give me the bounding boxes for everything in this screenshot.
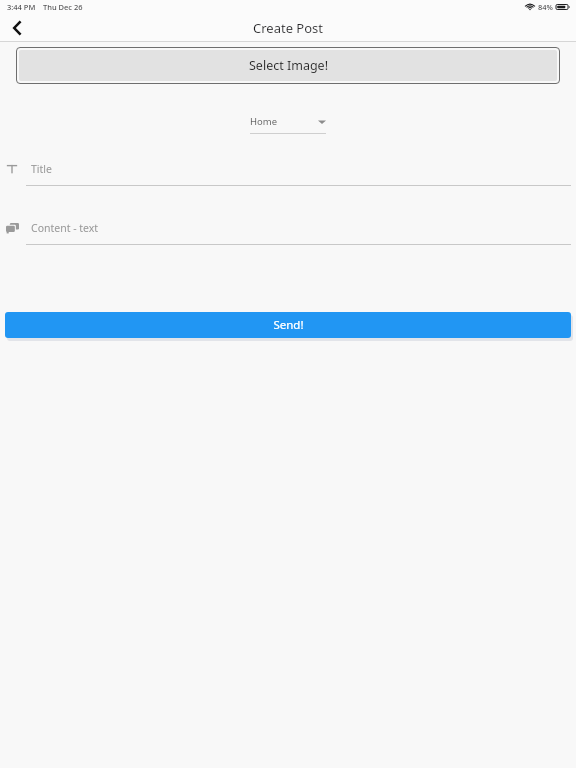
button[interactable]: Content - text <box>0 220 576 245</box>
button[interactable]: Back <box>0 14 34 42</box>
staticText: Thu Dec 26 <box>43 2 83 12</box>
staticText: Select Image! <box>249 57 328 74</box>
button[interactable]: Title <box>0 161 576 186</box>
button[interactable]: Select Image! <box>19 50 557 81</box>
staticText: 84% <box>538 2 553 12</box>
staticText: Create Post <box>253 19 324 37</box>
button[interactable]: Send! <box>5 312 571 338</box>
staticText: Send! <box>273 317 304 333</box>
staticText: Content - text <box>31 221 99 235</box>
button[interactable]: Home <box>250 115 326 134</box>
staticText: Home <box>250 115 278 128</box>
staticText: Title <box>31 162 52 176</box>
staticText: 3:44 PM <box>7 2 36 12</box>
